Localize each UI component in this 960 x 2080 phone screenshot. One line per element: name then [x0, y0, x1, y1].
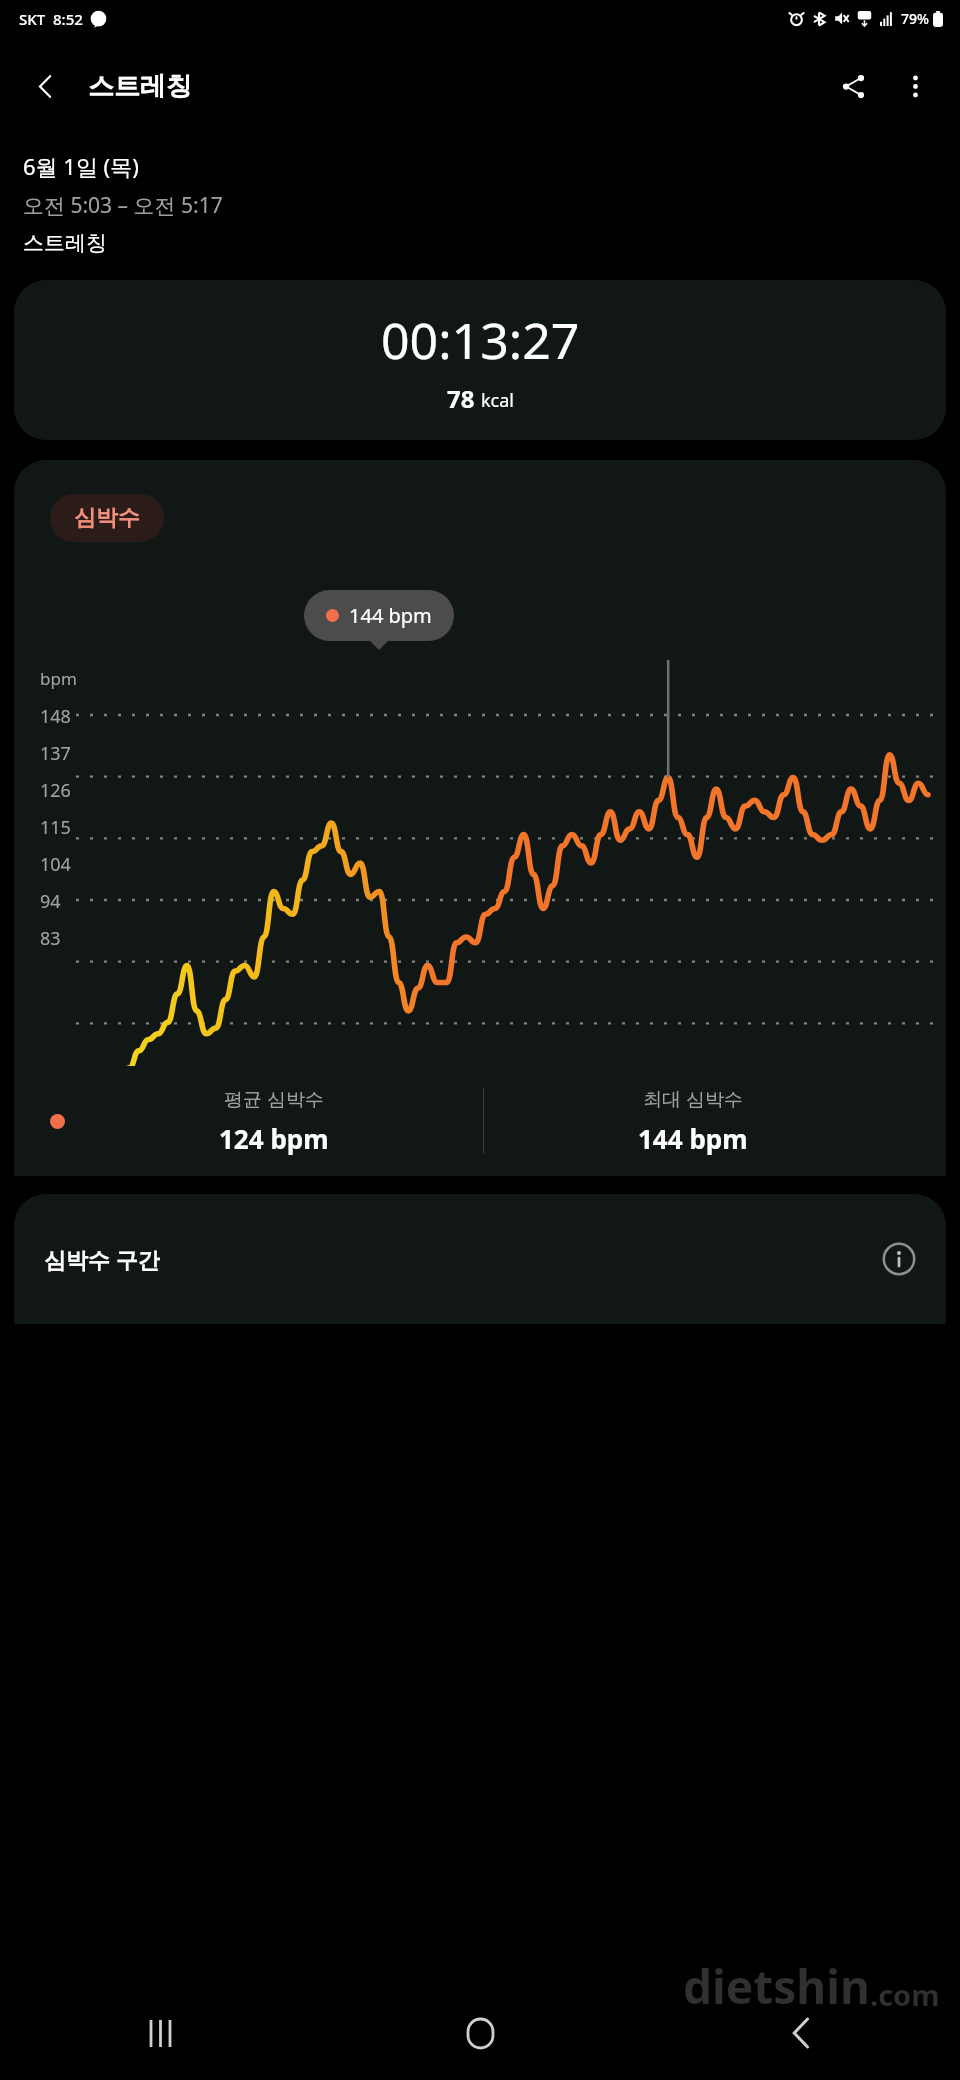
button[interactable]: Back — [16, 57, 74, 115]
button[interactable]: More options — [884, 55, 946, 117]
staticText: 126 — [40, 778, 71, 803]
staticText: 83 — [40, 926, 61, 951]
staticText: 심박수 — [74, 504, 140, 532]
staticText: 124 bpm — [219, 1121, 329, 1156]
staticText: 최대 심박수 — [643, 1086, 743, 1112]
staticText: 평균 심박수 — [224, 1086, 324, 1112]
button[interactable]: Information — [876, 1236, 922, 1282]
staticText: kcal — [481, 388, 514, 413]
staticText: 00:13:27 — [381, 306, 580, 374]
button[interactable]: Share — [822, 55, 884, 117]
staticText: dietshin — [683, 1955, 870, 2018]
button[interactable]: Back — [640, 1986, 960, 2080]
staticText: 144 bpm — [349, 602, 432, 629]
staticText: 148 — [40, 704, 71, 729]
staticText: 104 — [40, 852, 71, 877]
button[interactable]: Home — [320, 1986, 640, 2080]
staticText: bpm — [40, 667, 77, 690]
staticText: 8:52 — [53, 9, 83, 29]
staticText: 144 bpm — [638, 1121, 748, 1156]
staticText: 오전 5:03 – 오전 5:17 — [23, 191, 223, 220]
staticText: SKT — [19, 9, 46, 29]
staticText: 6월 1일 (목) — [23, 151, 139, 181]
staticText: .com — [870, 1975, 940, 2014]
button[interactable]: 심박수 — [50, 494, 164, 542]
button[interactable]: 심박수 구간 — [14, 1194, 946, 1324]
staticText: 78 — [447, 382, 475, 415]
staticText: 분 — [40, 1116, 58, 1139]
button[interactable]: 00:13:27 — [14, 280, 946, 440]
staticText: 115 — [40, 815, 71, 840]
button[interactable]: Recent apps — [0, 1986, 320, 2080]
staticText: 79% — [901, 9, 929, 28]
staticText: 심박수 구간 — [44, 1244, 160, 1274]
staticText: 94 — [40, 889, 61, 914]
staticText: 137 — [40, 741, 71, 766]
staticText: 스트레칭 — [88, 70, 192, 103]
staticText: 스트레칭 — [23, 230, 107, 256]
